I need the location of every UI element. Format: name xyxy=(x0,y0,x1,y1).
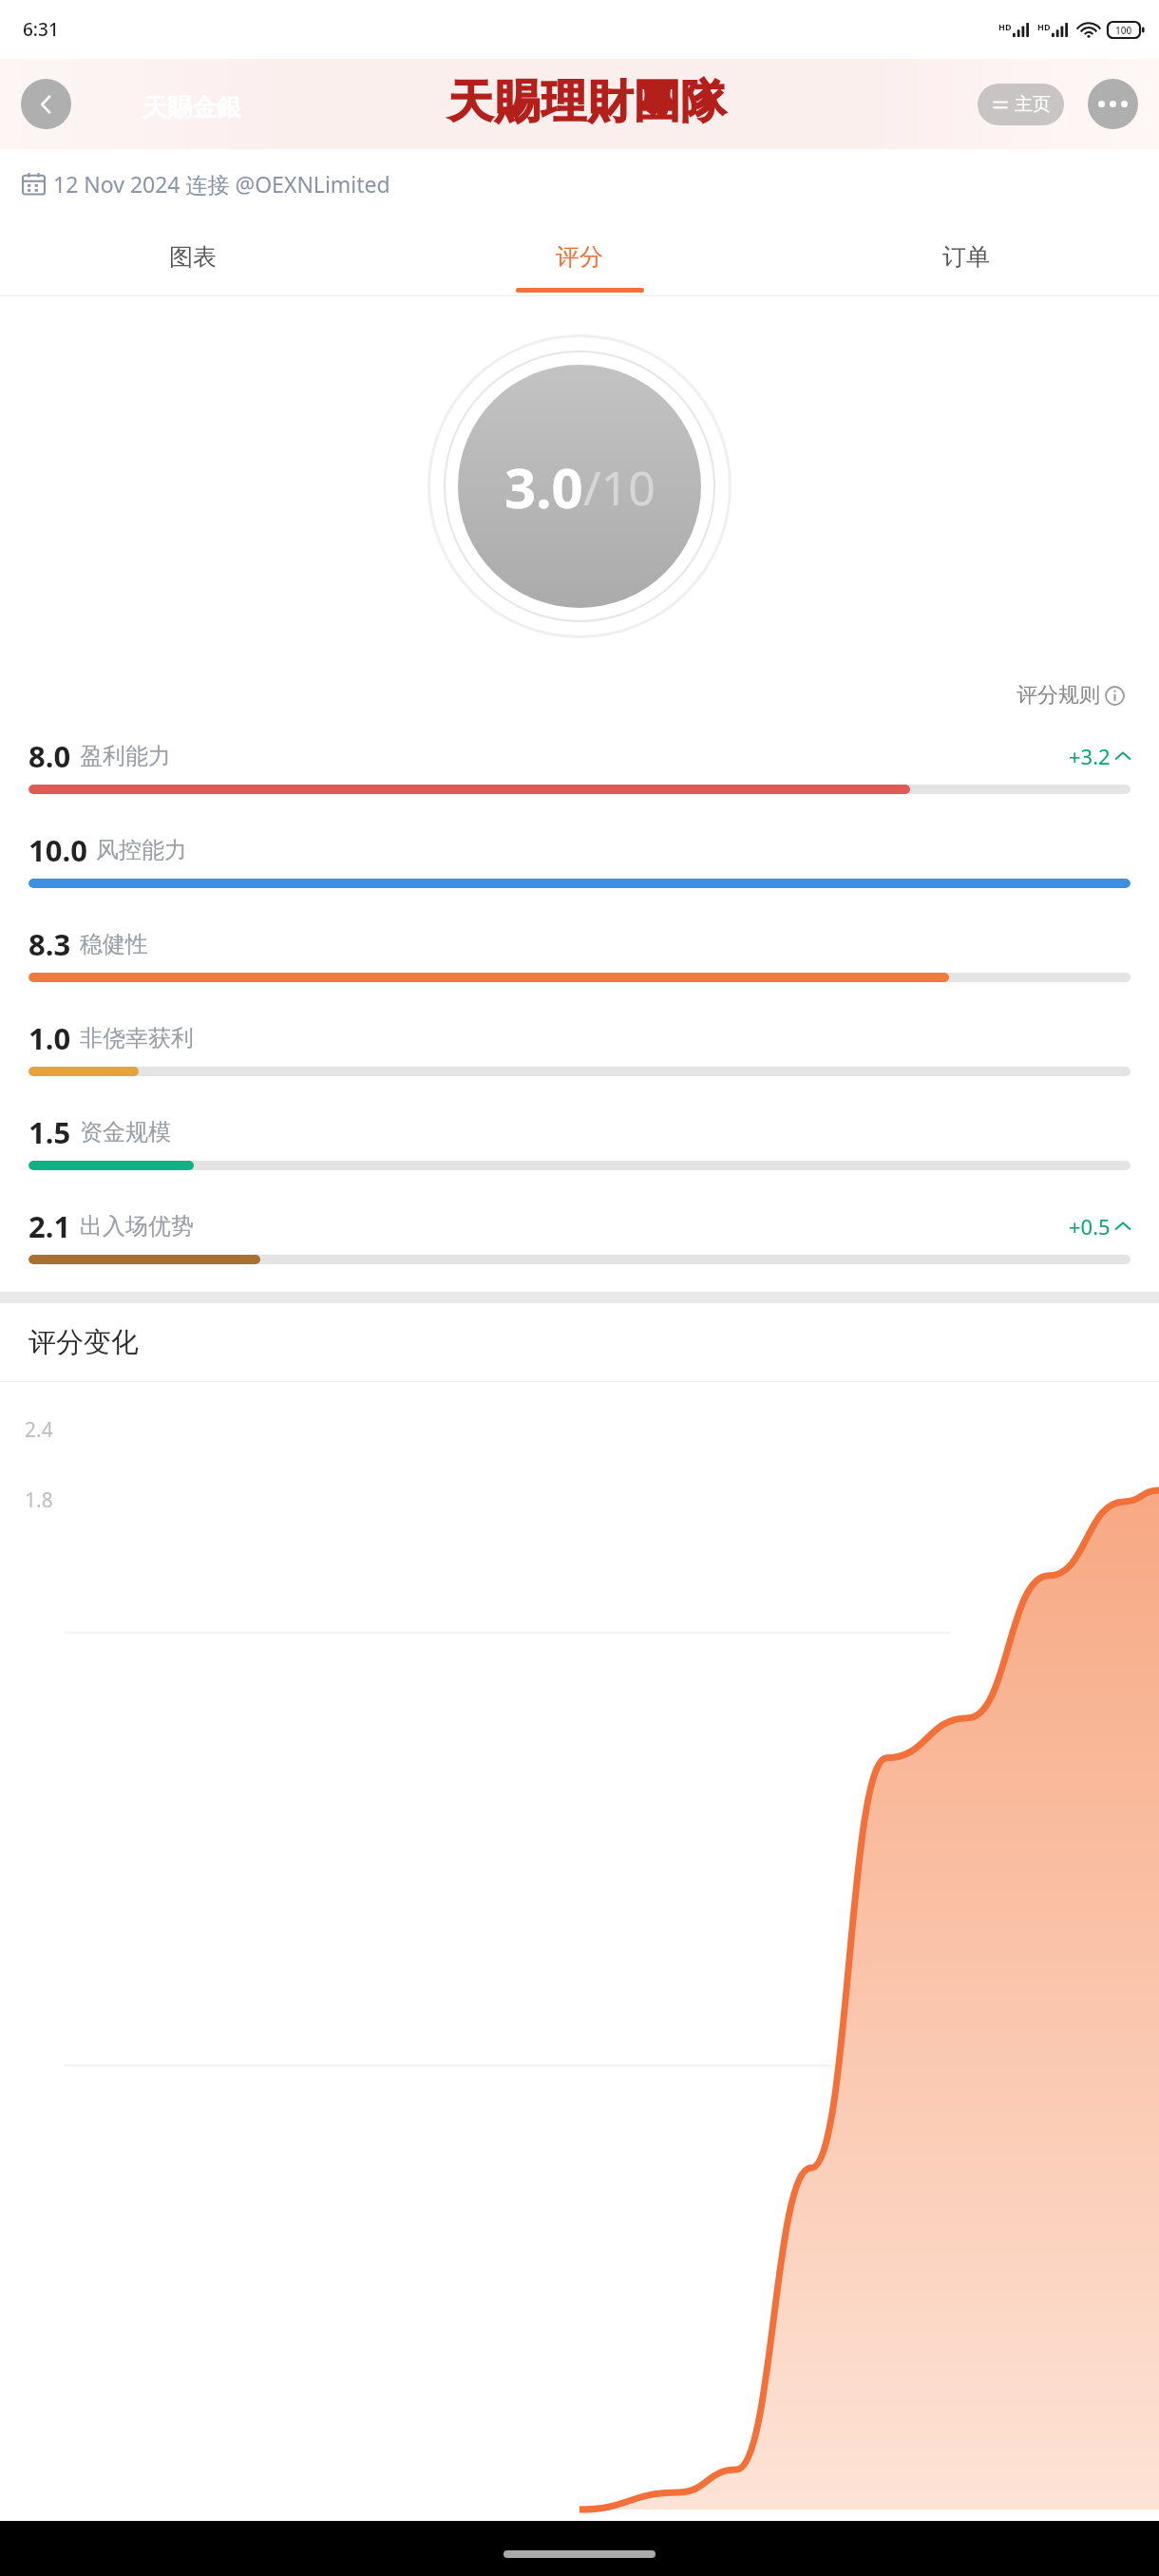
button[interactable]: 评分规则 xyxy=(1011,676,1130,714)
staticText: 12 Nov 2024 连接 @OEXNLimited xyxy=(53,169,390,199)
staticText: 6:31 xyxy=(23,17,59,42)
staticText: 评分变化 xyxy=(28,1325,139,1360)
button[interactable]: 8.0 xyxy=(0,728,1159,822)
staticText: HD xyxy=(1037,21,1051,32)
button[interactable]: 主页 xyxy=(991,84,1051,125)
staticText: 非侥幸获利 xyxy=(80,1024,194,1052)
staticText: 1.0 xyxy=(28,1018,71,1058)
button[interactable]: 8.3 xyxy=(0,916,1159,1010)
staticText: 1.5 xyxy=(28,1112,71,1152)
button[interactable]: Back xyxy=(21,79,71,129)
staticText: 主页 xyxy=(1015,93,1051,116)
button[interactable]: 10.0 xyxy=(0,822,1159,916)
staticText: 8.3 xyxy=(28,924,71,964)
button[interactable]: 1.5 xyxy=(0,1104,1159,1198)
staticText: 3.0 xyxy=(504,449,583,524)
button[interactable]: 2.1 xyxy=(0,1198,1159,1292)
staticText: 天賜金銀 xyxy=(142,92,241,123)
staticText: HD xyxy=(998,21,1012,32)
staticText: 10.0 xyxy=(28,830,87,870)
staticText: 天賜理財團隊 xyxy=(447,74,727,130)
staticText: +0.5 xyxy=(1069,1212,1111,1241)
button[interactable]: 图表 xyxy=(0,218,386,295)
staticText: 盈利能力 xyxy=(80,742,171,770)
button[interactable]: 评分 xyxy=(386,218,772,295)
staticText: 订单 xyxy=(942,242,990,272)
staticText: 8.0 xyxy=(28,736,71,776)
button[interactable]: 1.0 xyxy=(0,1010,1159,1104)
button[interactable]: 订单 xyxy=(772,218,1159,295)
staticText: 1.8 xyxy=(25,1487,53,1514)
staticText: 稳健性 xyxy=(80,930,148,958)
staticText: /10 xyxy=(583,455,655,520)
staticText: 出入场优势 xyxy=(80,1212,194,1241)
staticText: 风控能力 xyxy=(96,836,187,864)
staticText: 资金规模 xyxy=(80,1118,171,1146)
staticText: 100 xyxy=(1115,24,1132,37)
staticText: 2.1 xyxy=(28,1206,71,1246)
staticText: 图表 xyxy=(169,242,217,272)
staticText: 2.4 xyxy=(25,1416,53,1444)
staticText: 评分规则 xyxy=(1016,682,1100,709)
button[interactable]: More options xyxy=(1088,79,1138,129)
staticText: 评分 xyxy=(556,242,603,272)
staticText: +3.2 xyxy=(1069,742,1111,770)
